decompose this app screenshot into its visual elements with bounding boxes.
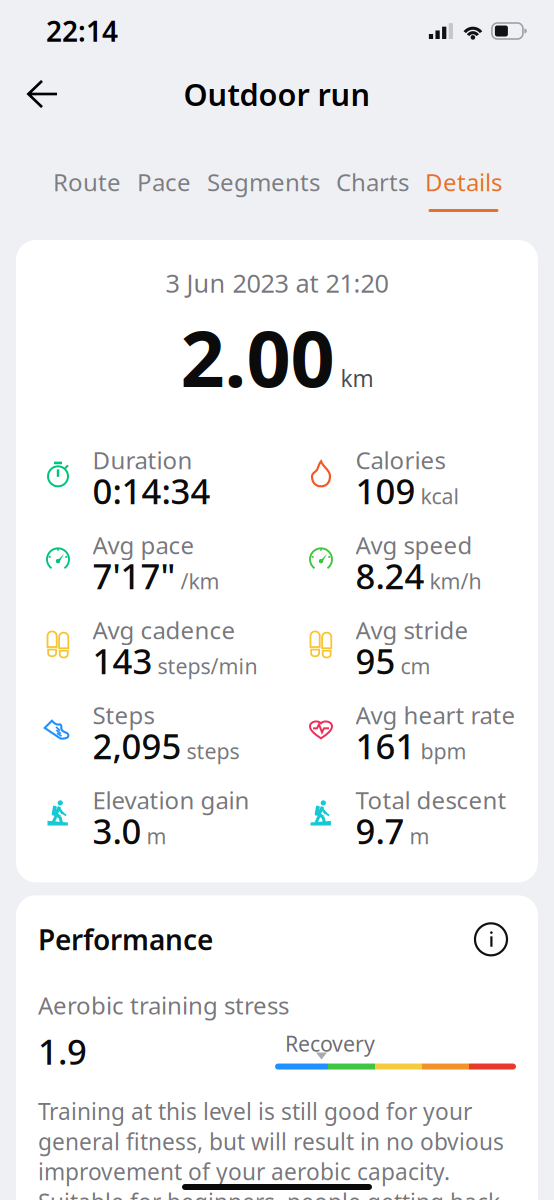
staticText: Steps — [92, 699, 154, 731]
staticText: Route — [53, 166, 121, 198]
staticText: Duration — [92, 444, 192, 476]
staticText: Outdoor run — [183, 74, 370, 114]
staticText: Pace — [137, 166, 191, 198]
staticText: 8.24 — [355, 553, 424, 599]
staticText: 2,095 — [92, 723, 181, 769]
staticText: Details — [425, 166, 502, 198]
staticText: Elevation gain — [92, 784, 249, 816]
button[interactable]: Back — [0, 65, 75, 122]
staticText: 9.7 — [355, 808, 404, 854]
button[interactable]: Info — [466, 917, 516, 961]
staticText: 3 Jun 2023 at 21:20 — [165, 266, 388, 300]
staticText: Avg speed — [355, 529, 472, 561]
staticText: Segments — [207, 166, 320, 198]
button[interactable]: Segments — [207, 166, 320, 212]
staticText: 0:14:34 — [92, 468, 210, 514]
staticText: 3.0 — [92, 808, 141, 854]
staticText: km/h — [429, 567, 481, 595]
staticText: 2.00 — [180, 306, 334, 408]
staticText: Training at this level is still good for… — [38, 1096, 504, 1200]
staticText: Charts — [336, 166, 409, 198]
staticText: 143 — [92, 638, 152, 684]
button[interactable]: Pace — [137, 166, 191, 212]
staticText: steps — [186, 737, 239, 765]
button[interactable]: Charts — [336, 166, 409, 212]
staticText: Avg cadence — [92, 614, 235, 646]
staticText: kcal — [420, 482, 459, 510]
staticText: 22:14 — [46, 12, 118, 50]
staticText: cm — [400, 652, 430, 680]
staticText: Avg stride — [355, 614, 468, 646]
staticText: 109 — [355, 468, 415, 514]
staticText: m — [409, 822, 429, 850]
staticText: Total descent — [355, 784, 506, 816]
staticText: bpm — [420, 737, 466, 765]
staticText: Performance — [38, 921, 213, 958]
button[interactable]: Details — [425, 166, 502, 212]
staticText: 7'17" — [92, 553, 175, 599]
staticText: Aerobic training stress — [38, 989, 289, 1021]
button[interactable]: Route — [53, 166, 121, 212]
staticText: 1.9 — [38, 1028, 87, 1074]
staticText: steps/min — [157, 652, 257, 680]
staticText: Avg heart rate — [355, 699, 515, 731]
staticText: /km — [180, 567, 219, 595]
staticText: Calories — [355, 444, 445, 476]
staticText: Avg pace — [92, 529, 194, 561]
staticText: 161 — [355, 723, 415, 769]
staticText: km — [340, 363, 373, 393]
staticText: 95 — [355, 638, 395, 684]
staticText: Recovery — [285, 1029, 375, 1057]
staticText: m — [146, 822, 166, 850]
